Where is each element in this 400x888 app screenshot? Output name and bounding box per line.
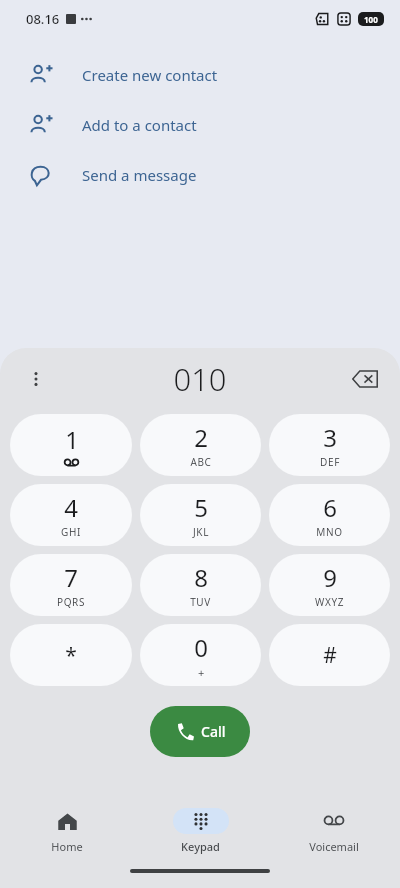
staticText: 100 <box>364 14 378 25</box>
staticText: DEF <box>320 455 340 469</box>
staticText: 9 <box>323 561 337 594</box>
button[interactable]: 8 <box>140 554 261 616</box>
button[interactable]: Home <box>0 800 134 862</box>
button[interactable]: More options <box>16 359 56 399</box>
button[interactable]: 3 <box>269 414 390 476</box>
staticText: Home <box>51 839 83 854</box>
staticText: 2 <box>194 421 208 454</box>
staticText: 7 <box>64 561 78 594</box>
button[interactable]: 0 <box>140 624 261 686</box>
staticText: Create new contact <box>82 65 218 85</box>
staticText: PQRS <box>57 595 85 609</box>
button[interactable]: 1 <box>10 414 132 476</box>
staticText: GHI <box>61 525 81 539</box>
staticText: + <box>198 665 205 680</box>
button[interactable]: 2 <box>140 414 261 476</box>
staticText: MNO <box>316 525 343 539</box>
button[interactable]: # <box>269 624 390 686</box>
staticText: 0 <box>194 631 208 664</box>
staticText: 5 <box>194 491 208 524</box>
staticText: 3 <box>323 421 337 454</box>
staticText: Call <box>201 722 226 741</box>
button[interactable]: 9 <box>269 554 390 616</box>
button[interactable]: Send a message <box>0 150 400 200</box>
staticText: WXYZ <box>315 595 344 609</box>
button[interactable]: Keypad <box>134 800 267 862</box>
button[interactable]: Call <box>150 706 250 757</box>
button[interactable]: 5 <box>140 484 261 546</box>
button[interactable]: * <box>10 624 132 686</box>
staticText: # <box>323 641 337 670</box>
button[interactable]: 4 <box>10 484 132 546</box>
staticText: ABC <box>190 455 212 469</box>
staticText: Add to a contact <box>82 115 197 135</box>
button[interactable]: Voicemail <box>267 800 400 862</box>
button[interactable]: 7 <box>10 554 132 616</box>
staticText: TUV <box>190 595 211 609</box>
staticText: 6 <box>323 491 337 524</box>
staticText: 1 <box>65 423 79 456</box>
staticText: 08.16 <box>26 10 60 28</box>
staticText: * <box>65 641 77 670</box>
button[interactable]: Add to a contact <box>0 100 400 150</box>
staticText: Send a message <box>82 165 197 185</box>
button[interactable]: 6 <box>269 484 390 546</box>
staticText: 4 <box>64 491 78 524</box>
staticText: Voicemail <box>309 839 359 854</box>
button[interactable]: Create new contact <box>0 50 400 100</box>
staticText: Keypad <box>181 839 220 854</box>
button[interactable]: Backspace <box>344 358 386 400</box>
staticText: 8 <box>194 561 208 594</box>
staticText: 010 <box>173 358 227 400</box>
staticText: JKL <box>193 525 209 539</box>
